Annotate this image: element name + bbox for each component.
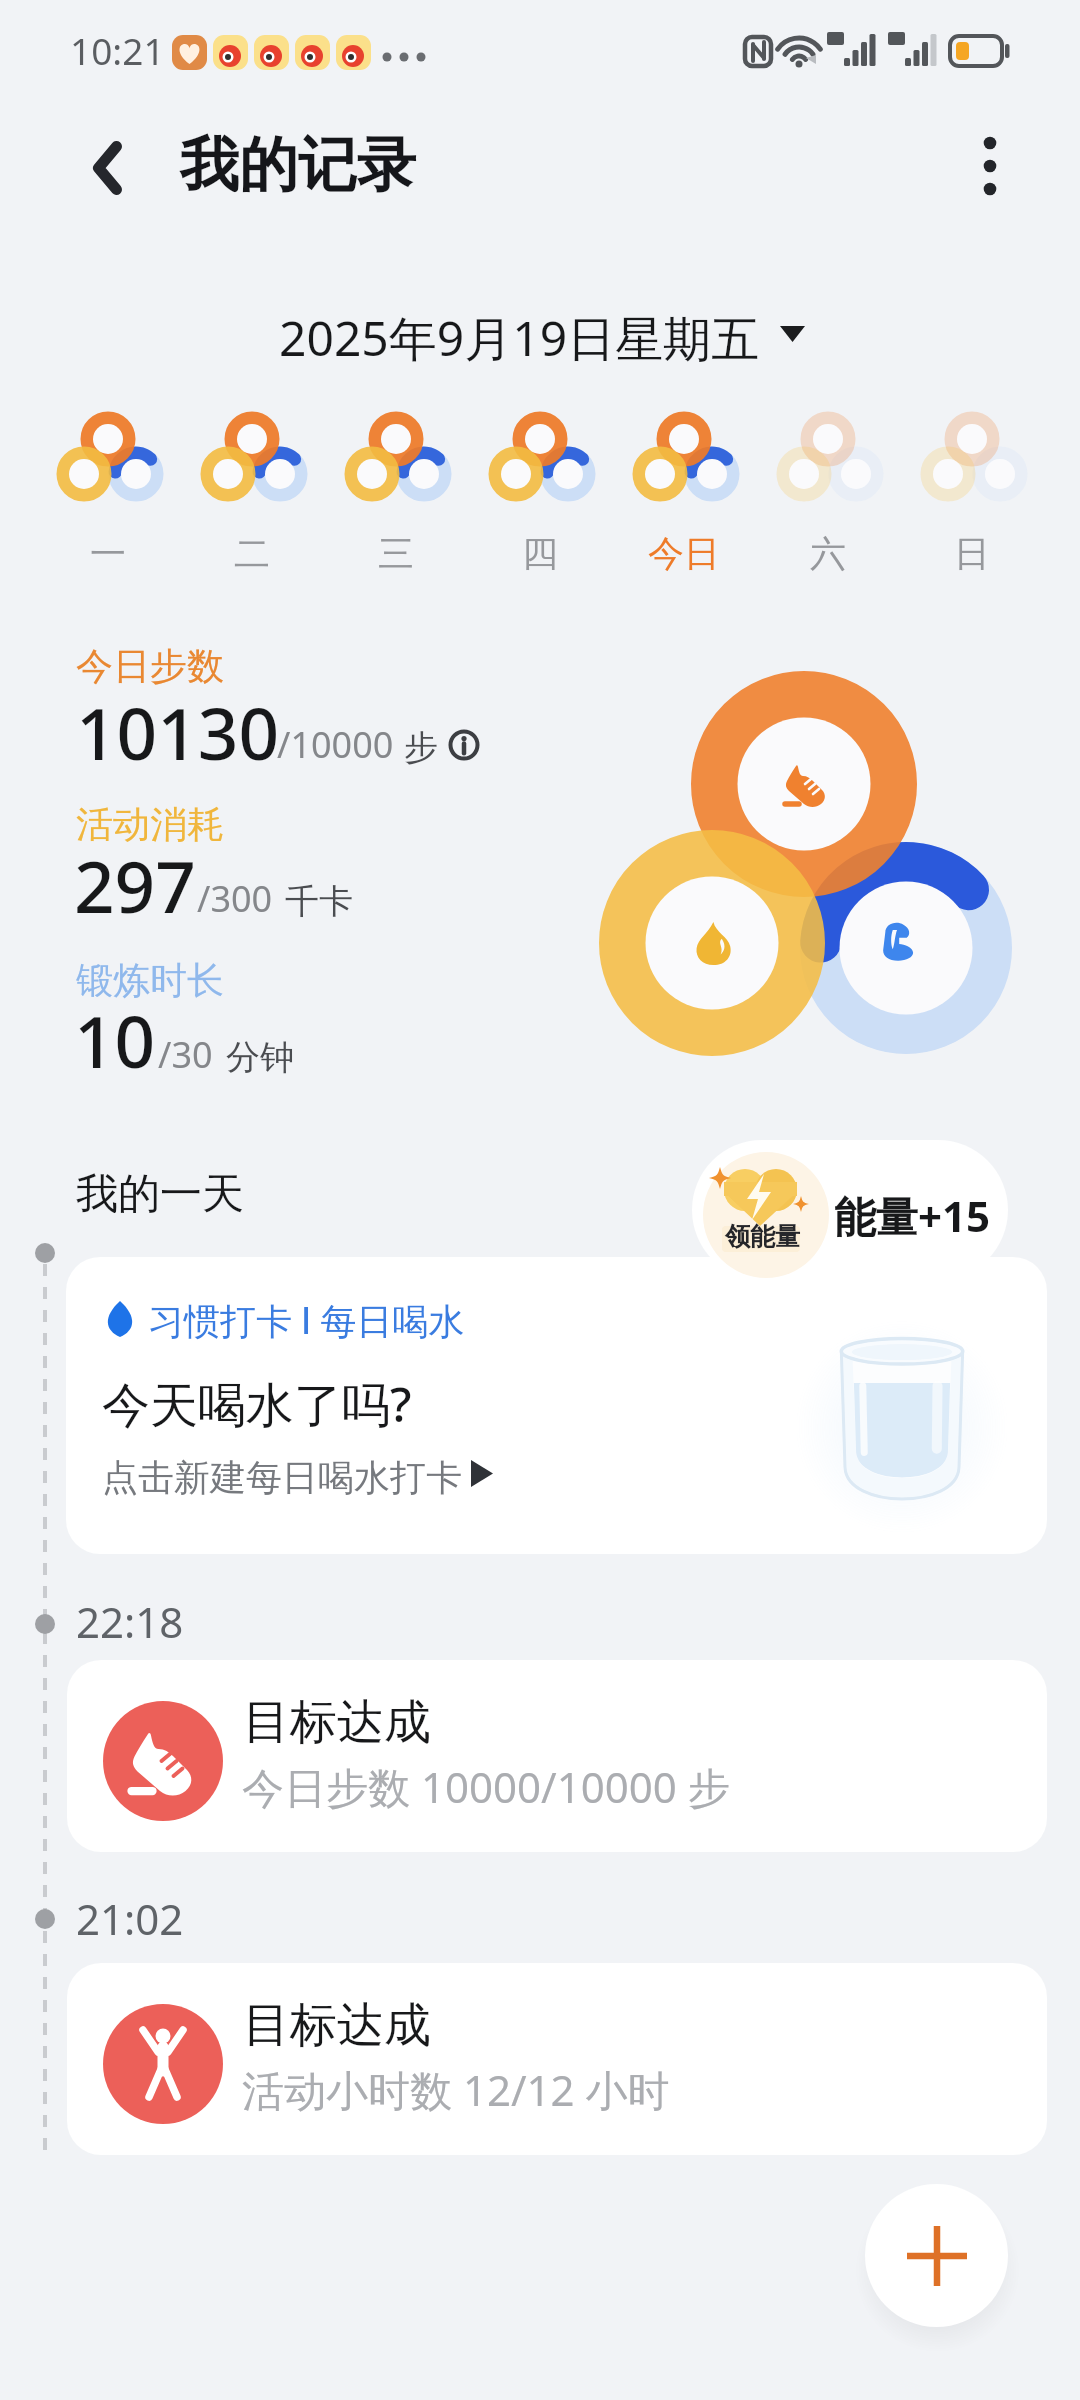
button[interactable]: 六 bbox=[756, 400, 900, 570]
staticText: 锻炼时长 bbox=[76, 957, 224, 1004]
staticText: 二 bbox=[234, 531, 270, 576]
button[interactable]: Back bbox=[57, 112, 157, 224]
staticText: 分钟 bbox=[226, 1036, 294, 1079]
staticText: 习惯打卡 l 每日喝水 bbox=[148, 1296, 465, 1345]
staticText: 297 bbox=[74, 837, 196, 934]
button[interactable]: 目标达成 bbox=[67, 1963, 1047, 2155]
button[interactable]: 二 bbox=[180, 400, 324, 570]
staticText: 四 bbox=[522, 531, 558, 576]
button[interactable]: 四 bbox=[468, 400, 612, 570]
staticText: /300 bbox=[197, 874, 273, 923]
staticText: 10:21 bbox=[70, 25, 165, 75]
button[interactable]: 一 bbox=[36, 400, 180, 570]
staticText: 21:02 bbox=[76, 1890, 184, 1947]
staticText: 我的一天 bbox=[76, 1168, 244, 1221]
button[interactable]: 目标达成 bbox=[67, 1660, 1047, 1852]
button[interactable]: 领能量 bbox=[692, 1140, 1008, 1280]
staticText: 步 bbox=[404, 726, 438, 769]
staticText: 三 bbox=[378, 531, 414, 576]
staticText: 我的记录 bbox=[180, 128, 416, 202]
staticText: /10000 bbox=[277, 720, 394, 769]
staticText: 千卡 bbox=[285, 880, 353, 923]
staticText: 六 bbox=[810, 531, 846, 576]
staticText: 22:18 bbox=[76, 1593, 184, 1650]
button[interactable]: 2025年9月19日星期五 bbox=[265, 296, 825, 372]
staticText: 今日 bbox=[648, 531, 720, 576]
staticText: 10 bbox=[74, 992, 156, 1089]
staticText: 今日步数 10000/10000 步 bbox=[242, 1758, 730, 1815]
button[interactable]: Add record bbox=[865, 2184, 1008, 2327]
button[interactable]: More options bbox=[934, 112, 1046, 224]
staticText: 10130 bbox=[76, 684, 280, 781]
staticText: 2025年9月19日星期五 bbox=[279, 305, 760, 371]
staticText: 今天喝水了吗? bbox=[102, 1371, 412, 1437]
staticText: 一 bbox=[90, 531, 126, 576]
staticText: 日 bbox=[954, 531, 990, 576]
staticText: 目标达成 bbox=[243, 1693, 431, 1752]
staticText: /30 bbox=[158, 1030, 213, 1079]
staticText: 目标达成 bbox=[243, 1996, 431, 2055]
staticText: 点击新建每日喝水打卡 bbox=[102, 1455, 462, 1500]
button[interactable]: 三 bbox=[324, 400, 468, 570]
button[interactable]: 今日 bbox=[612, 400, 756, 570]
staticText: 能量+15 bbox=[834, 1187, 991, 1244]
button[interactable]: 日 bbox=[900, 400, 1044, 570]
staticText: 活动消耗 bbox=[76, 801, 224, 848]
staticText: 今日步数 bbox=[76, 643, 224, 690]
staticText: 领能量 bbox=[725, 1221, 800, 1252]
staticText: 活动小时数 12/12 小时 bbox=[242, 2061, 670, 2118]
button[interactable]: 习惯打卡 l 每日喝水 bbox=[66, 1257, 1047, 1554]
